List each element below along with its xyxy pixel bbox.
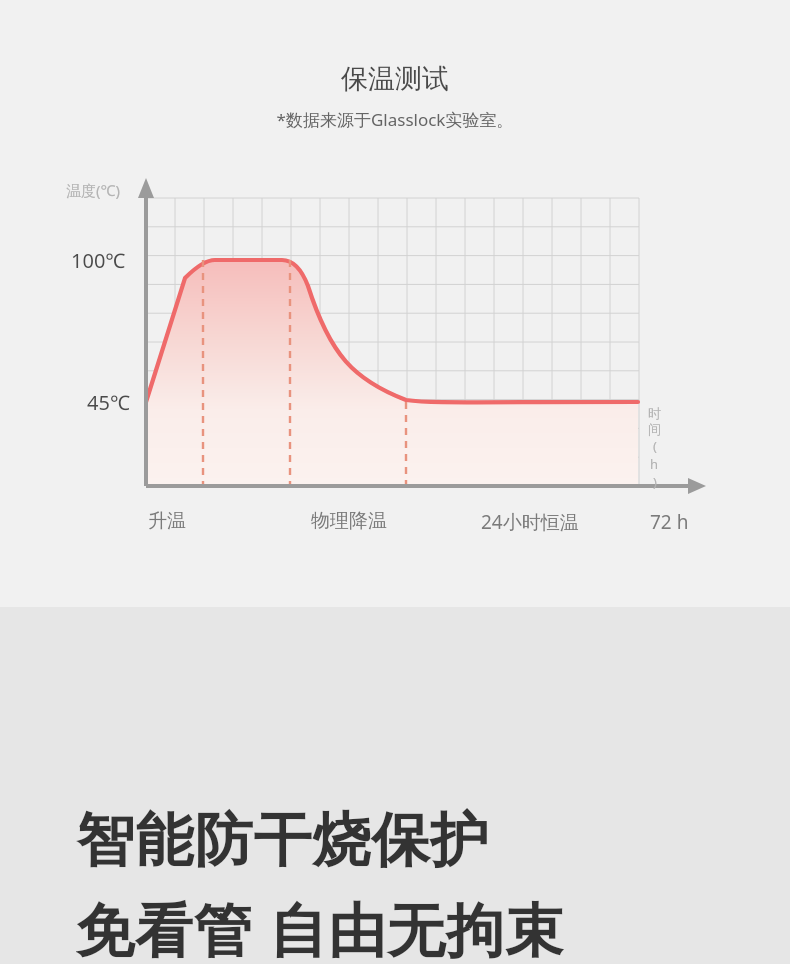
- staticText: 时: [648, 405, 661, 421]
- staticText: ): [653, 473, 657, 491]
- staticText: 免看管 自由无拘束: [76, 889, 565, 964]
- staticText: 100℃: [71, 247, 126, 274]
- staticText: 保温测试: [0, 62, 790, 96]
- staticText: 间: [648, 421, 661, 437]
- staticText: 物理降温: [311, 509, 387, 533]
- staticText: 温度(℃): [66, 180, 120, 200]
- staticText: (: [653, 437, 657, 455]
- staticText: 升温: [148, 509, 186, 533]
- staticText: 智能防干烧保护: [76, 804, 489, 877]
- staticText: 24小时恒温: [481, 509, 579, 535]
- staticText: 45℃: [87, 389, 130, 416]
- staticText: 72 h: [650, 509, 689, 535]
- staticText: *数据来源于Glasslock实验室。: [0, 108, 790, 131]
- staticText: h: [650, 455, 659, 473]
